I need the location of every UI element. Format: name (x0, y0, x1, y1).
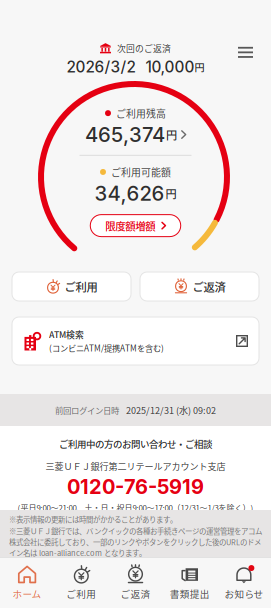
staticText: (平日9:00〜21:00、土・日・祝日9:00〜17:00（12/31〜1/3… (17, 502, 253, 513)
staticText: 書類提出 (170, 586, 210, 600)
staticText: (コンビニATM/提携ATMを含む) (49, 342, 164, 354)
staticText: ご返済 (120, 586, 150, 600)
staticText: ATM検索 (49, 328, 84, 341)
staticText: ご利用残高 (116, 106, 166, 120)
staticText: 円 (194, 59, 204, 74)
staticText: ※三菱ＵＦＪ銀行では、バンクイックの各種お手続きページの運営管理をアコム株式会社… (9, 526, 262, 558)
button[interactable]: 465,374 (85, 122, 186, 147)
button[interactable]: ホーム (0, 557, 54, 608)
button[interactable]: ご利用 (12, 272, 131, 301)
staticText: お知らせ (224, 586, 263, 600)
button[interactable]: 書類提出 (163, 557, 217, 608)
button[interactable]: ご返済 (140, 272, 259, 301)
staticText: 円 (165, 185, 176, 201)
button[interactable]: 0120-76-5919 (67, 474, 204, 499)
staticText: 2026/3/2 (66, 58, 135, 76)
staticText: 0120-76-5919 (67, 474, 204, 499)
staticText: 前回ログイン日時 (55, 404, 119, 416)
staticText: 10,000 (145, 58, 194, 76)
staticText: 2025/12/31 (水) 09:02 (126, 403, 216, 416)
staticText: 34,626 (94, 181, 164, 206)
staticText: ご利用 (64, 278, 97, 295)
button[interactable]: ATM検索 (12, 317, 259, 365)
staticText: ※表示情報の更新には時間がかかることがあります。 (9, 514, 177, 525)
staticText: 円 (166, 126, 177, 143)
staticText: ホーム (13, 586, 42, 600)
button[interactable]: ご返済 (108, 557, 163, 608)
staticText: ご返済 (192, 278, 225, 295)
staticText: 三菱ＵＦＪ銀行第二リテールアカウント支店 (45, 459, 225, 472)
staticText: 次回のご返済 (117, 42, 171, 55)
staticText: ご利用 (66, 586, 96, 600)
staticText: ご利用可能額 (111, 165, 171, 179)
staticText: 465,374 (85, 122, 165, 147)
button[interactable]: ご利用 (54, 557, 108, 608)
button[interactable]: メニュー (227, 36, 264, 69)
staticText: 限度額増額 (105, 218, 155, 233)
button[interactable]: お知らせ (217, 557, 271, 608)
button[interactable]: 限度額増額 (90, 215, 181, 237)
staticText: ご利用中の方のお問い合わせ・ご相談 (59, 437, 212, 450)
